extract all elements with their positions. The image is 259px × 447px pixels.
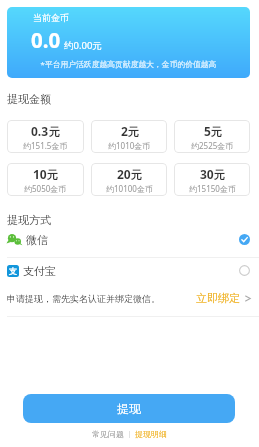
staticText: 元	[49, 125, 60, 139]
staticText: 约2525金币	[191, 140, 234, 151]
button[interactable]: 微信	[0, 227, 259, 252]
button[interactable]: 立即绑定	[196, 291, 252, 305]
staticText: 20	[117, 166, 131, 182]
button[interactable]: 30	[174, 163, 250, 196]
staticText: 0.0	[31, 26, 61, 54]
staticText: 元	[131, 168, 142, 182]
staticText: 约151.5金币	[23, 140, 68, 151]
button[interactable]: 0.3	[7, 120, 84, 153]
staticText: 元	[211, 125, 222, 139]
staticText: *平台用户活跃度越高贡献度越大，金币的价值越高	[7, 59, 250, 70]
staticText: 元	[47, 168, 58, 182]
button[interactable]: 10	[7, 163, 84, 196]
other: More	[244, 294, 252, 303]
staticText: 约10100金币	[106, 183, 153, 194]
other: Selected	[239, 234, 250, 245]
staticText: 元	[128, 125, 139, 139]
staticText: 微信	[26, 233, 48, 247]
staticText: 30	[200, 166, 214, 182]
button[interactable]: 常见问题	[92, 429, 124, 439]
button[interactable]: 2	[91, 120, 167, 153]
staticText: 5	[204, 123, 211, 139]
staticText: 约5050金币	[24, 183, 67, 194]
staticText: 立即绑定	[196, 291, 240, 305]
button[interactable]: 提现明细	[135, 429, 167, 439]
button[interactable]: 5	[174, 120, 250, 153]
button[interactable]: 20	[91, 163, 167, 196]
button[interactable]: 提现	[23, 394, 235, 423]
staticText: 约1010金币	[108, 140, 151, 151]
staticText: 当前金币	[33, 12, 69, 23]
other: Not selected	[239, 265, 250, 276]
staticText: 10	[33, 166, 47, 182]
staticText: 支	[9, 266, 17, 276]
staticText: 元	[214, 168, 225, 182]
button[interactable]: 支	[0, 258, 259, 283]
staticText: 约0.00元	[64, 39, 102, 52]
staticText: 2	[121, 123, 128, 139]
staticText: 提现	[117, 401, 141, 416]
staticText: 0.3	[31, 123, 49, 139]
staticText: 提现方式	[7, 213, 51, 227]
staticText: 约15150金币	[189, 183, 236, 194]
staticText: 申请提现，需先实名认证并绑定微信。	[7, 293, 160, 304]
staticText: 提现金额	[7, 92, 51, 106]
staticText: 支付宝	[23, 264, 56, 278]
